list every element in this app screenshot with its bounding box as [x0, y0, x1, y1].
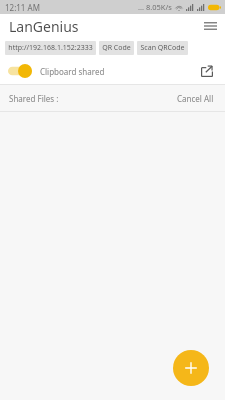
button[interactable]: QR Code [99, 41, 134, 55]
button[interactable]: http://192.168.1.152:2333 [5, 41, 96, 55]
staticText: Clipboard shared [40, 66, 105, 77]
staticText: Scan QRCode [140, 43, 185, 53]
staticText: ... 8.05K/s [138, 2, 172, 12]
staticText: Shared Files : [9, 93, 59, 104]
staticText: 12:11 AM [5, 2, 40, 13]
button[interactable]: Cancel All [175, 90, 216, 107]
button[interactable]: Add file [173, 350, 209, 386]
staticText: QR Code [102, 43, 131, 53]
staticText: Cancel All [177, 93, 214, 104]
button[interactable]: Menu [200, 16, 220, 36]
staticText: http://192.168.1.152:2333 [8, 43, 93, 53]
button[interactable]: Scan QRCode [137, 41, 188, 55]
staticText: LanGenius [9, 17, 79, 36]
button[interactable]: Clipboard shared [8, 64, 109, 78]
button[interactable]: Open in browser [197, 61, 217, 81]
